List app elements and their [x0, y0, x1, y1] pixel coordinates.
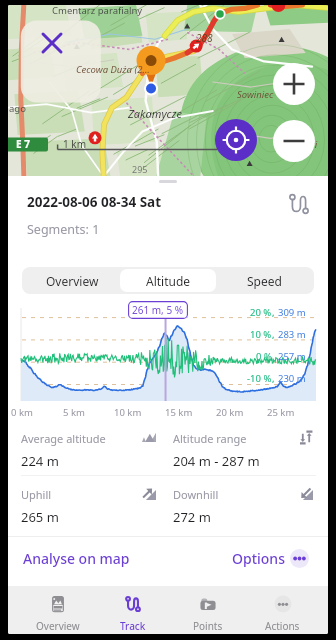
button[interactable]: Uphill	[21, 487, 156, 523]
button[interactable]: Speed	[216, 269, 312, 292]
button[interactable]: My location	[215, 119, 257, 161]
staticText: 224 m	[21, 452, 59, 470]
staticText: 20 %	[250, 306, 272, 319]
staticText: E 7	[16, 137, 30, 151]
staticText: 5 km	[63, 406, 114, 419]
staticText: ,	[272, 306, 278, 319]
staticText: Altitude range	[173, 431, 247, 446]
button[interactable]: Overview	[24, 269, 120, 292]
staticText: 204 m - 287 m	[173, 452, 260, 470]
staticText: 1 km	[63, 137, 87, 151]
staticText: Segments: 1	[27, 221, 100, 238]
staticText: 265 m	[21, 508, 59, 526]
staticText: 230 m	[278, 372, 306, 385]
button[interactable]: Zoom in	[273, 63, 315, 105]
staticText: Analyse on map	[23, 549, 130, 568]
staticText: 2022-08-06 08-34 Sat	[27, 193, 162, 211]
button[interactable]: Options	[226, 541, 315, 576]
staticText: Overview	[36, 619, 80, 633]
staticText: 283 m	[278, 328, 306, 341]
staticText: 10 %	[250, 328, 272, 341]
button[interactable]: Average altitude	[21, 431, 156, 467]
staticText: Zakamycze	[128, 106, 182, 121]
staticText: 15 km	[165, 406, 216, 419]
staticText: ,	[272, 350, 278, 363]
button[interactable]: Downhill	[173, 487, 313, 523]
button[interactable]: Analyse on map	[17, 541, 136, 576]
staticText: ski	[306, 138, 318, 151]
button[interactable]: Close	[40, 31, 64, 55]
button[interactable]: Track	[95, 586, 170, 634]
staticText: Downhill	[173, 487, 219, 502]
button[interactable]: Zoom out	[273, 120, 315, 162]
staticText: Actions	[265, 619, 300, 633]
staticText: Track	[120, 619, 146, 633]
button[interactable]: Actions	[245, 586, 320, 634]
staticText: Speed	[247, 273, 282, 289]
staticText: ,	[272, 328, 278, 341]
staticText: Points	[193, 619, 223, 633]
button[interactable]: Track shape	[287, 192, 311, 216]
staticText: Sowiniec	[237, 88, 274, 101]
staticText: Uphill	[21, 487, 52, 502]
staticText: 272 m	[173, 508, 211, 526]
staticText: 0 km	[11, 406, 63, 419]
staticText: 0 %	[256, 350, 272, 363]
staticText: 25 km	[267, 406, 318, 419]
button[interactable]: Altitude range	[173, 431, 313, 467]
staticText: Cmentarz parafialny	[52, 5, 143, 17]
staticText: Overview	[46, 273, 99, 289]
staticText: 295	[132, 163, 148, 175]
button[interactable]: Altitude	[120, 269, 216, 292]
staticText: Altitude	[146, 273, 191, 289]
staticText: 10 km	[114, 406, 165, 419]
staticText: 261 m, 5 %	[132, 303, 184, 317]
staticText: 288	[196, 31, 213, 45]
staticText: Cecowa Duża (2…	[76, 63, 150, 76]
staticText: Options	[232, 549, 285, 568]
staticText: ago	[9, 102, 26, 115]
staticText: ,	[272, 372, 278, 385]
staticText: 257 m	[278, 350, 306, 363]
staticText: 20 km	[216, 406, 267, 419]
staticText: -10 %	[247, 372, 272, 385]
staticText: Average altitude	[21, 431, 106, 446]
button[interactable]: Points	[170, 586, 245, 634]
button[interactable]: Overview	[20, 586, 95, 634]
staticText: 309 m	[278, 306, 306, 319]
